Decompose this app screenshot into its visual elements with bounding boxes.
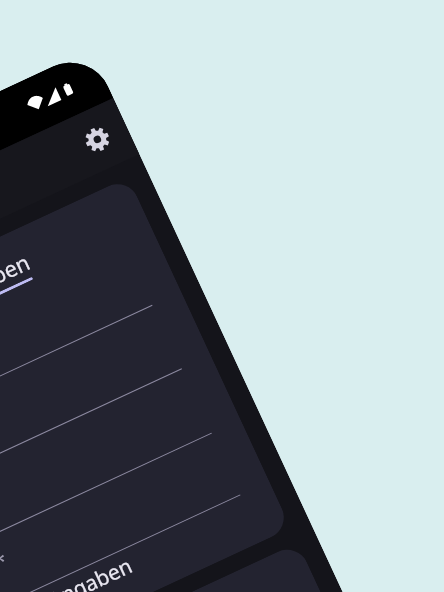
button[interactable]: Settings (68, 110, 126, 169)
button[interactable]: Angaben (0, 177, 159, 383)
staticText: Bemerkungen * (0, 546, 13, 592)
staticText: Weitere Angaben (0, 551, 137, 592)
staticText: Angaben (0, 246, 35, 313)
